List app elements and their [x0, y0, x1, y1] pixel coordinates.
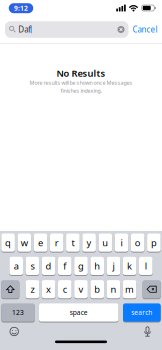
- button[interactable]: k: [123, 257, 136, 275]
- button[interactable]: Cancel: [132, 24, 157, 35]
- staticText: y: [87, 236, 92, 249]
- button[interactable]: q: [1, 233, 15, 252]
- button[interactable]: s: [26, 257, 39, 275]
- button[interactable]: u: [98, 233, 112, 252]
- button[interactable]: p: [147, 233, 161, 252]
- button[interactable]: x: [42, 280, 55, 298]
- staticText: q: [5, 236, 11, 249]
- staticText: g: [78, 260, 84, 272]
- staticText: n: [110, 283, 116, 295]
- button[interactable]: Dictation: [143, 326, 151, 337]
- staticText: d: [46, 260, 52, 272]
- staticText: p: [151, 236, 157, 249]
- button[interactable]: g: [74, 257, 88, 275]
- staticText: search: [131, 308, 152, 317]
- button[interactable]: Clear text: [117, 26, 124, 33]
- button[interactable]: r: [50, 233, 63, 252]
- button[interactable]: Delete: [143, 280, 161, 298]
- button[interactable]: c: [58, 280, 72, 298]
- button[interactable]: Time: [9, 3, 33, 13]
- staticText: m: [125, 283, 134, 295]
- staticText: finishes indexing.: [60, 87, 101, 94]
- staticText: l: [145, 260, 147, 272]
- button[interactable]: z: [26, 280, 39, 298]
- staticText: x: [46, 283, 51, 295]
- staticText: c: [63, 283, 67, 295]
- button[interactable]: Emoji: [10, 327, 19, 336]
- button[interactable]: Shift: [1, 280, 19, 298]
- staticText: Cancel: [132, 24, 157, 35]
- staticText: r: [55, 236, 59, 249]
- button[interactable]: y: [82, 233, 96, 252]
- button[interactable]: b: [90, 280, 104, 298]
- staticText: e: [38, 236, 43, 249]
- staticText: 9:12: [14, 4, 28, 13]
- staticText: i: [120, 236, 122, 249]
- button[interactable]: i: [115, 233, 128, 252]
- staticText: No Results: [56, 67, 105, 79]
- button[interactable]: v: [74, 280, 88, 298]
- staticText: v: [78, 283, 83, 295]
- button[interactable]: e: [34, 233, 47, 252]
- staticText: b: [94, 283, 100, 295]
- staticText: 123: [12, 308, 24, 317]
- button[interactable]: 123: [1, 303, 35, 322]
- staticText: u: [102, 236, 108, 249]
- staticText: t: [71, 236, 74, 249]
- staticText: h: [94, 260, 100, 272]
- button[interactable]: l: [139, 257, 153, 275]
- button[interactable]: a: [9, 257, 23, 275]
- button[interactable]: d: [42, 257, 55, 275]
- staticText: o: [135, 236, 141, 249]
- textField[interactable]: Daf: [18, 24, 117, 35]
- staticText: f: [63, 260, 66, 272]
- button[interactable]: m: [123, 280, 136, 298]
- button[interactable]: search: [123, 303, 161, 322]
- staticText: a: [14, 260, 19, 272]
- staticText: k: [127, 260, 132, 272]
- staticText: space: [70, 308, 88, 317]
- staticText: s: [30, 260, 34, 272]
- button[interactable]: h: [90, 257, 104, 275]
- button[interactable]: w: [17, 233, 31, 252]
- button[interactable]: n: [107, 280, 120, 298]
- staticText: Daf: [18, 24, 31, 35]
- button[interactable]: o: [131, 233, 144, 252]
- staticText: z: [30, 283, 34, 295]
- staticText: More results will be shown once Messages: [29, 79, 132, 86]
- button[interactable]: t: [66, 233, 80, 252]
- button[interactable]: space: [39, 303, 118, 322]
- button[interactable]: j: [107, 257, 120, 275]
- staticText: w: [21, 236, 28, 249]
- staticText: j: [112, 260, 114, 272]
- button[interactable]: f: [58, 257, 72, 275]
